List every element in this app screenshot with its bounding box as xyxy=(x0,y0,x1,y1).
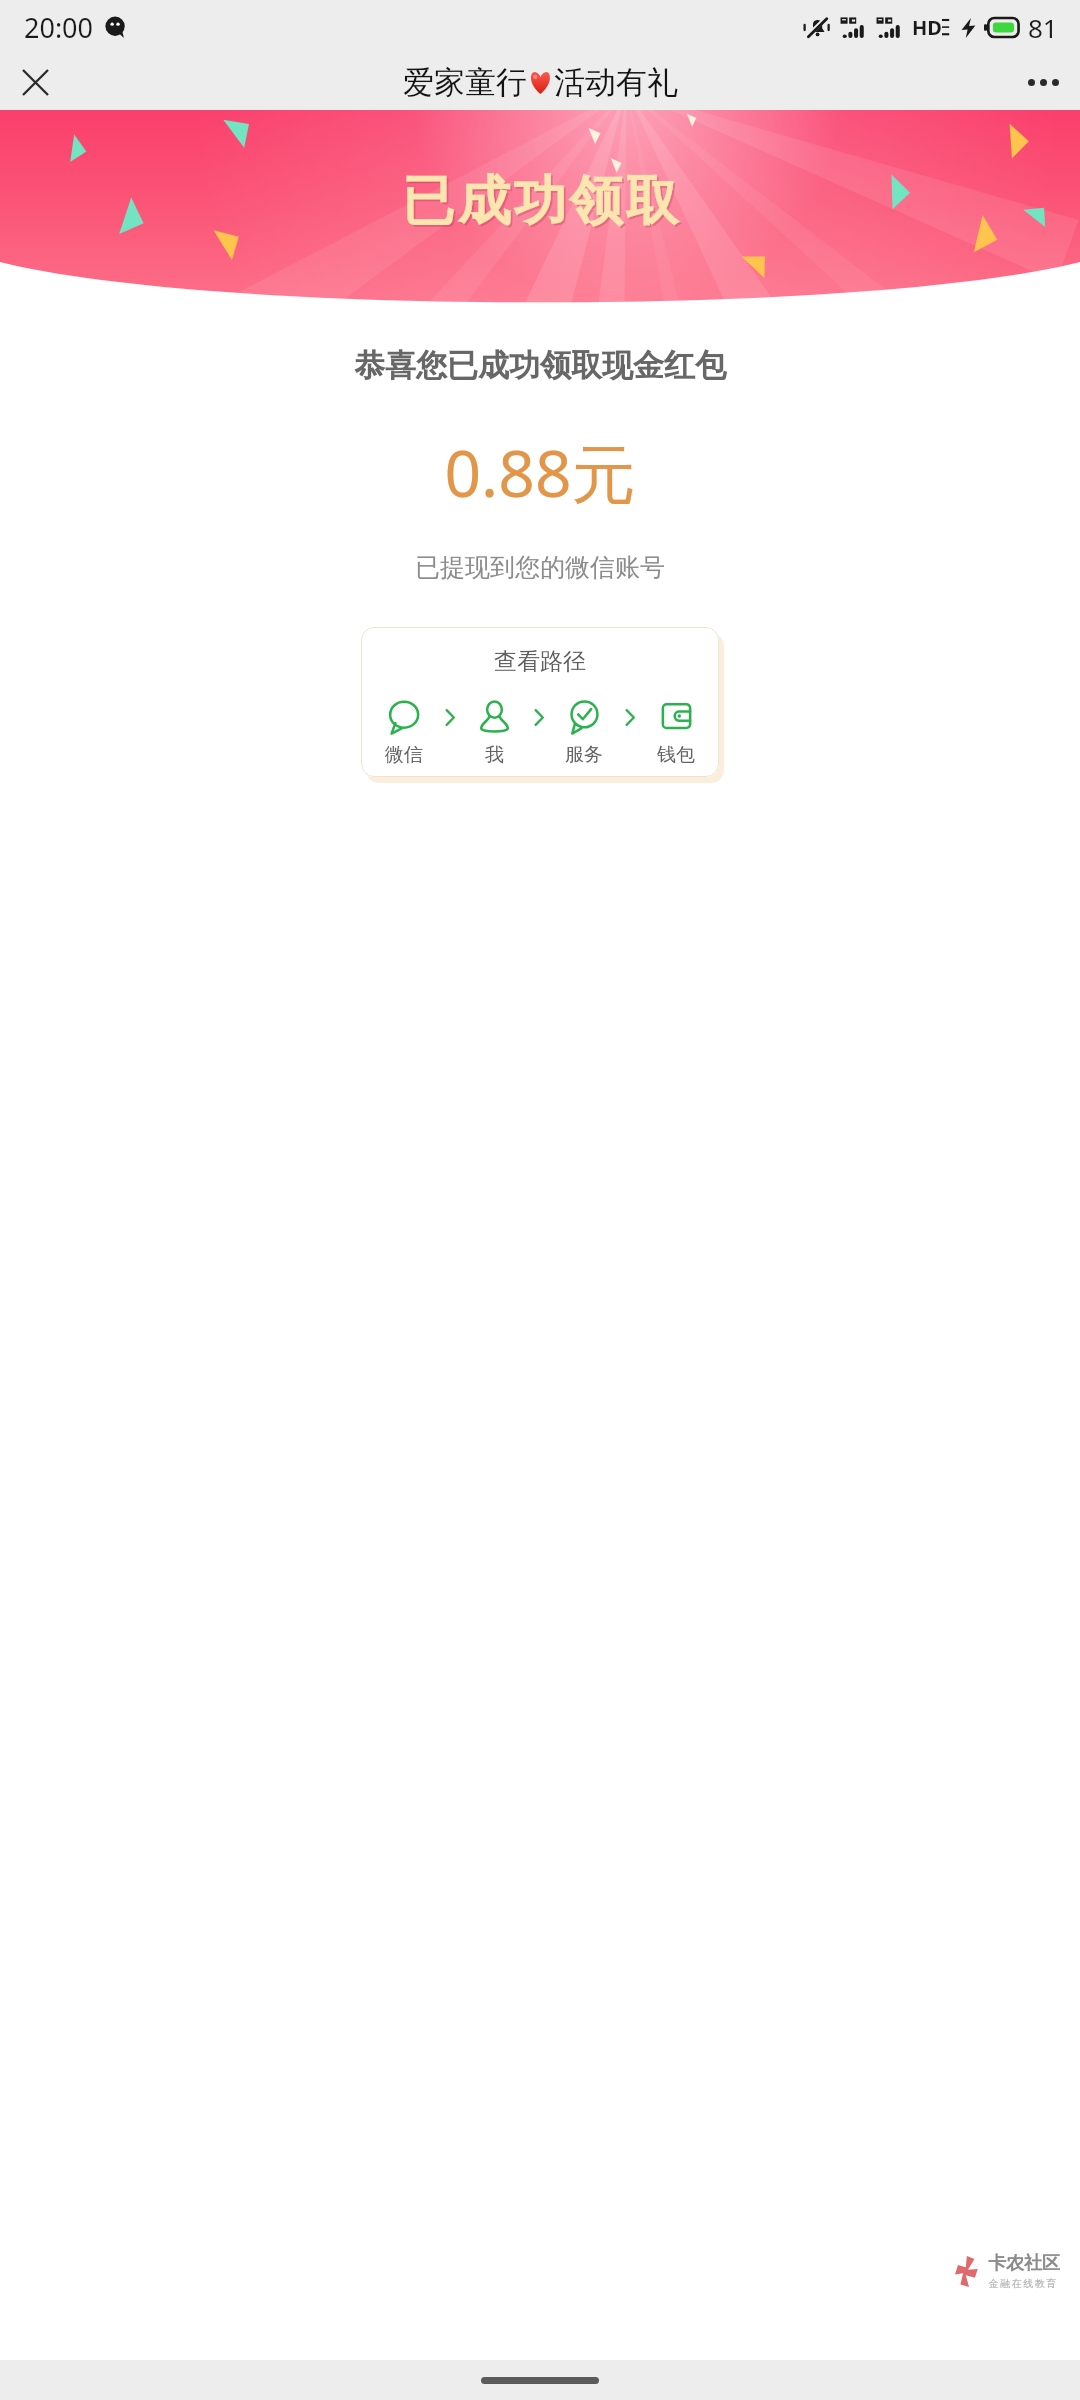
staticText: 活动有礼 xyxy=(554,63,678,102)
staticText: 我 xyxy=(485,743,504,767)
button[interactable]: More options xyxy=(1014,55,1072,110)
staticText: 81 xyxy=(1028,10,1058,45)
staticText: 服务 xyxy=(565,743,603,767)
button[interactable]: 钱包 xyxy=(657,700,695,767)
staticText: 已成功领取 xyxy=(402,170,682,237)
staticText: 卡农社区 xyxy=(988,2252,1060,2275)
staticText: 已提现到您的微信账号 xyxy=(0,552,1080,583)
button[interactable]: 服务 xyxy=(565,700,603,767)
staticText: 20:00 xyxy=(24,9,94,46)
staticText: 金融在线教育 xyxy=(988,2277,1057,2290)
staticText: 已成功领取 xyxy=(400,168,680,235)
staticText: 钱包 xyxy=(657,743,695,767)
staticText: 爱家童行 xyxy=(403,63,527,102)
staticText: 查看路径 xyxy=(494,647,586,676)
staticText: 0.88元 xyxy=(0,429,1080,516)
button[interactable]: 我 xyxy=(477,700,512,767)
staticText: 微信 xyxy=(385,743,423,767)
staticText: 恭喜您已成功领取现金红包 xyxy=(0,346,1080,385)
button[interactable]: 查看路径 xyxy=(361,627,719,777)
button[interactable]: 微信 xyxy=(385,700,423,767)
staticText: HD xyxy=(912,14,942,41)
button[interactable]: Close xyxy=(6,55,64,110)
